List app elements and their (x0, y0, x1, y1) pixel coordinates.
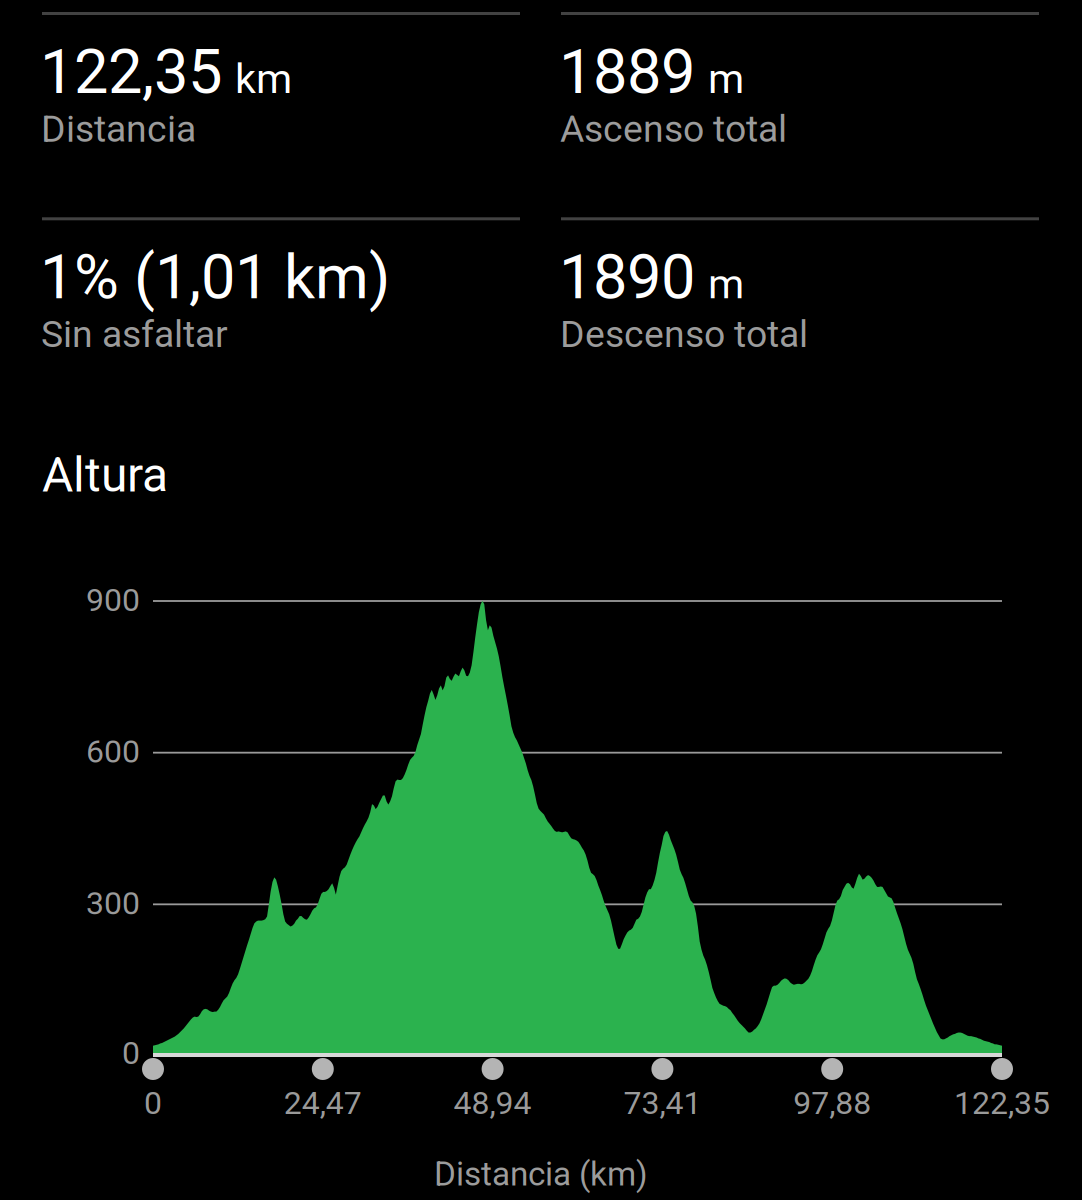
staticText: 1% (1,01 km) (40, 241, 390, 313)
button[interactable]: 1889 (0, 0, 1082, 1200)
staticText: Ascenso total (560, 107, 787, 151)
staticText: m (708, 260, 744, 308)
staticText: 73,41 (623, 1084, 701, 1122)
staticText: 122,35 (40, 36, 222, 108)
staticText: 1890 (559, 241, 695, 313)
staticText: 0 (122, 1034, 140, 1072)
staticText: km (235, 55, 292, 103)
staticText: Sin asfaltar (41, 312, 228, 356)
staticText: 900 (86, 581, 140, 619)
button[interactable]: 1890 (0, 0, 1082, 1200)
staticText: Descenso total (560, 312, 808, 356)
staticText: 1889 (559, 36, 695, 108)
staticText: Distancia (41, 107, 196, 151)
button[interactable]: 122,35 (0, 0, 1082, 1200)
staticText: 300 (86, 885, 140, 922)
staticText: 24,47 (284, 1084, 362, 1122)
staticText: 48,94 (454, 1084, 532, 1122)
staticText: Distancia (km) (434, 1154, 648, 1194)
staticText: Altura (42, 447, 168, 503)
staticText: 122,35 (954, 1084, 1050, 1122)
staticText: m (708, 55, 744, 103)
staticText: 97,88 (793, 1084, 871, 1122)
staticText: 600 (86, 733, 140, 770)
button[interactable]: 1% (1,01 km) (0, 0, 1082, 1200)
staticText: 0 (144, 1084, 162, 1122)
